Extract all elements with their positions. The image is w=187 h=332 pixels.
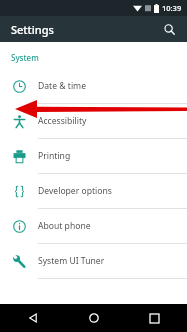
staticText: Date & time [38,80,87,92]
button[interactable]: System UI Tuner [0,244,187,278]
staticText: Printing [38,150,71,162]
staticText: System UI Tuner [38,255,105,267]
button[interactable]: Developer options [0,174,187,208]
button[interactable]: Back [22,307,44,329]
staticText: Developer options [38,185,112,197]
staticText: Settings [11,22,54,37]
staticText: About phone [38,220,91,232]
staticText: System [11,52,39,63]
button[interactable]: Recent apps [143,307,165,329]
button[interactable]: Accessibility [0,104,187,138]
button[interactable]: Search [159,19,179,39]
button[interactable]: Home [83,307,105,329]
button[interactable]: Printing [0,139,187,173]
staticText: 10:39 [162,3,182,13]
button[interactable]: Date & time [0,69,187,103]
staticText: Accessibility [38,115,87,127]
button[interactable]: About phone [0,209,187,243]
